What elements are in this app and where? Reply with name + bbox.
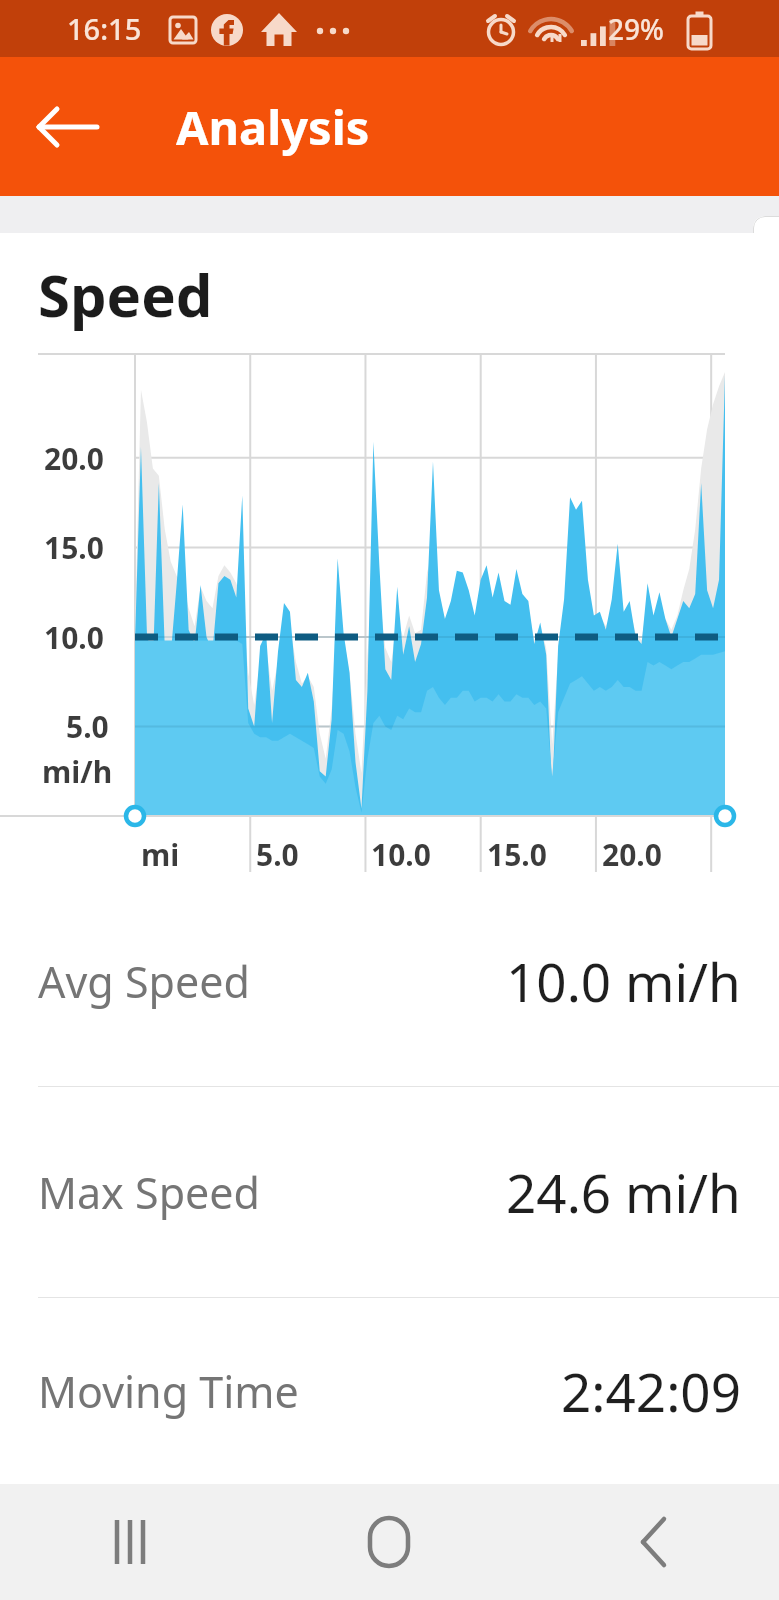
staticText: 20.0 (44, 438, 104, 479)
button[interactable]: Avg Speed (0, 876, 779, 1086)
staticText: 29% (608, 10, 664, 48)
button[interactable]: Home (259, 1484, 519, 1600)
button[interactable]: Max Speed (0, 1087, 779, 1297)
staticText: 15.0 (487, 834, 547, 875)
button[interactable]: Moving Time (0, 1298, 779, 1484)
button[interactable]: Back (26, 85, 110, 169)
staticText: 10.0 (371, 834, 431, 875)
button[interactable]: Back (519, 1484, 779, 1600)
staticText: 16:15 (67, 9, 142, 48)
staticText: 5.0 (256, 834, 299, 875)
staticText: 10.0 mi/h (506, 945, 741, 1017)
staticText: Analysis (176, 95, 370, 159)
staticText: Max Speed (38, 1163, 261, 1222)
staticText: Speed (38, 255, 213, 334)
staticText: 20.0 (602, 834, 662, 875)
staticText: Moving Time (38, 1362, 299, 1421)
staticText: 24.6 mi/h (506, 1156, 741, 1228)
button[interactable]: Recent apps (0, 1484, 259, 1600)
staticText: 5.0 (66, 706, 109, 747)
staticText: 10.0 (44, 617, 104, 658)
staticText: 15.0 (44, 527, 104, 568)
staticText: Avg Speed (38, 952, 250, 1011)
staticText: mi/h (42, 751, 113, 792)
staticText: mi (141, 834, 180, 875)
staticText: 2:42:09 (561, 1355, 741, 1427)
